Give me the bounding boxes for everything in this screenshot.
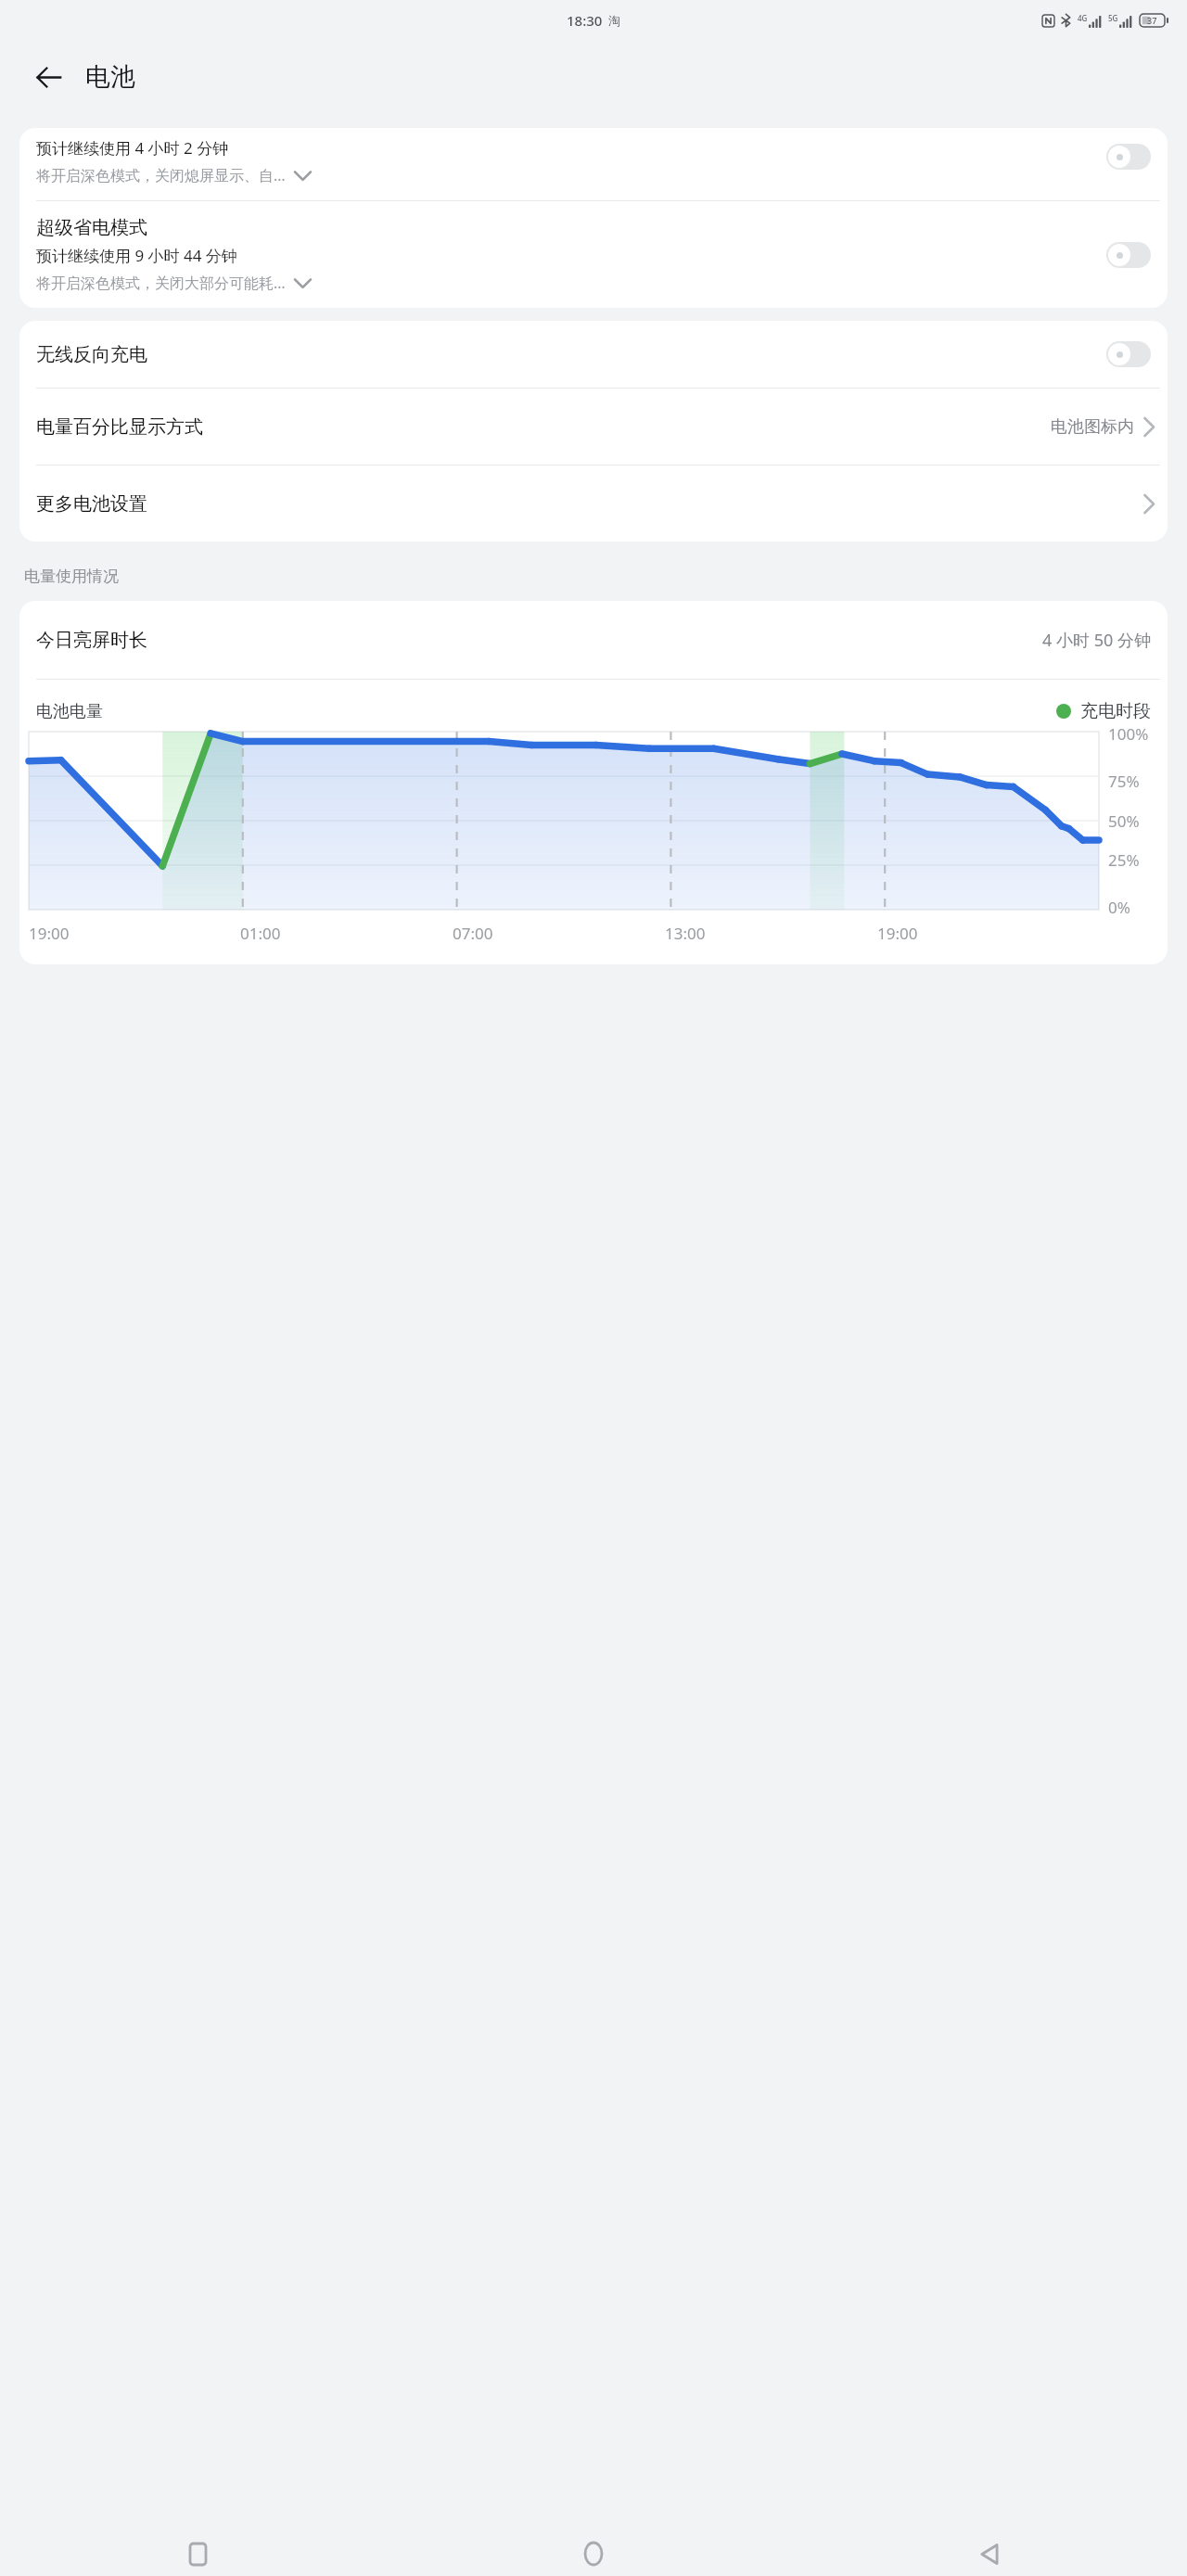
button[interactable]: Toggle: [1106, 242, 1151, 268]
staticText: 07:00: [453, 923, 493, 944]
button[interactable]: 预计继续使用 4 小时 2 分钟: [19, 128, 1168, 200]
staticText: 将开启深色模式，关闭熄屏显示、自…: [36, 165, 286, 185]
staticText: 今日亮屏时长: [36, 629, 1042, 652]
staticText: 电池图标内: [1051, 416, 1134, 438]
staticText: 18:30: [567, 11, 603, 30]
staticText: 无线反向充电: [36, 343, 1106, 366]
staticText: 电量百分比显示方式: [36, 415, 1051, 439]
staticText: 4G: [1078, 13, 1088, 23]
staticText: 超级省电模式: [36, 216, 147, 239]
button[interactable]: 超级省电模式: [19, 201, 1168, 308]
button[interactable]: Recents: [0, 2531, 395, 2576]
staticText: 电量使用情况: [24, 567, 119, 586]
button[interactable]: Home: [395, 2531, 791, 2576]
staticText: 37: [1147, 15, 1157, 26]
button[interactable]: 更多电池设置: [19, 465, 1168, 542]
button[interactable]: Back: [791, 2531, 1187, 2576]
staticText: 预计继续使用 4 小时 2 分钟: [36, 137, 229, 159]
staticText: 电池: [85, 61, 135, 93]
staticText: 75%: [1108, 771, 1140, 792]
staticText: 将开启深色模式，关闭大部分可能耗…: [36, 273, 286, 293]
button[interactable]: 今日亮屏时长: [19, 601, 1168, 679]
button[interactable]: 无线反向充电: [19, 321, 1168, 388]
staticText: 预计继续使用 9 小时 44 分钟: [36, 245, 237, 266]
staticText: 25%: [1108, 849, 1140, 871]
staticText: 5G: [1108, 13, 1118, 23]
staticText: 100%: [1108, 723, 1149, 745]
staticText: 电池电量: [36, 701, 103, 722]
staticText: 50%: [1108, 810, 1140, 832]
staticText: 更多电池设置: [36, 492, 1143, 516]
button[interactable]: 电量百分比显示方式: [19, 389, 1168, 465]
staticText: 充电时段: [1080, 700, 1151, 722]
staticText: 4 小时 50 分钟: [1042, 629, 1151, 652]
staticText: 淘: [608, 13, 620, 28]
button[interactable]: Toggle: [1106, 341, 1151, 367]
staticText: 19:00: [29, 923, 70, 944]
staticText: 01:00: [240, 923, 281, 944]
button[interactable]: Back: [24, 53, 72, 101]
staticText: 13:00: [665, 923, 706, 944]
staticText: 0%: [1108, 897, 1130, 918]
button[interactable]: Toggle: [1106, 144, 1151, 170]
staticText: 19:00: [877, 923, 918, 944]
